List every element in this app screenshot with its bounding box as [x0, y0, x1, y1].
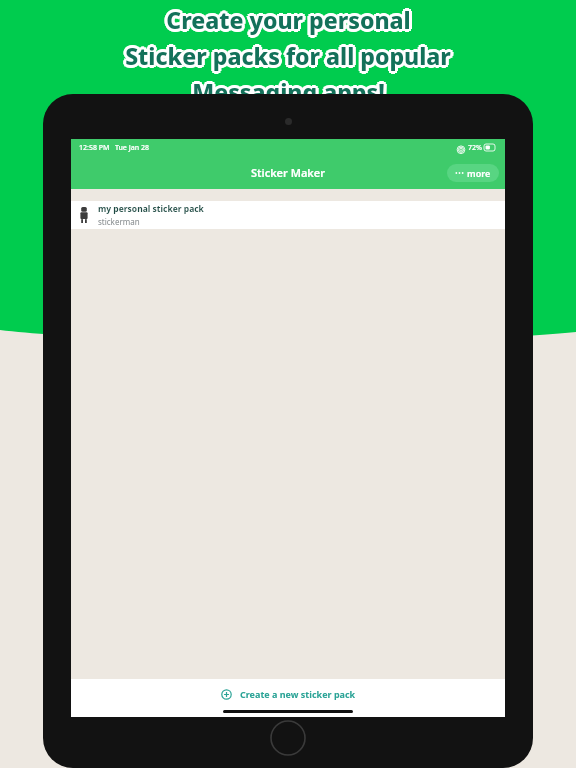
staticText: Create your personal: [166, 4, 411, 35]
staticText: more: [467, 167, 491, 179]
staticText: Sticker Maker: [251, 165, 326, 180]
staticText: Messaging apps!: [190, 76, 383, 107]
staticText: Sticker packs for all popular: [125, 38, 451, 69]
staticText: Create your personal: [168, 2, 413, 33]
staticText: Messaging apps!: [192, 78, 385, 109]
button[interactable]: more: [447, 164, 499, 182]
staticText: Sticker packs for all popular: [125, 43, 451, 74]
staticText: Messaging apps!: [194, 74, 387, 105]
staticText: Sticker packs for all popular: [128, 40, 454, 71]
staticText: Create your personal: [168, 6, 413, 37]
staticText: Create your personal: [169, 4, 414, 35]
staticText: Messaging apps!: [192, 79, 385, 110]
staticText: my personal sticker pack: [98, 203, 204, 215]
staticText: Messaging apps!: [194, 78, 387, 109]
staticText: Sticker packs for all popular: [127, 42, 453, 73]
button[interactable]: my personal sticker pack: [71, 201, 505, 229]
staticText: Create your personal: [168, 4, 413, 35]
staticText: Create your personal: [164, 6, 409, 37]
staticText: 72%: [468, 143, 482, 153]
staticText: Messaging apps!: [194, 76, 387, 107]
button[interactable]: Create a new sticker pack: [211, 684, 366, 704]
staticText: Messaging apps!: [192, 74, 385, 105]
staticText: Create your personal: [166, 6, 411, 37]
staticText: Sticker packs for all popular: [122, 40, 448, 71]
staticText: Messaging apps!: [189, 76, 382, 107]
staticText: stickerman: [98, 216, 140, 227]
staticText: 12:58 PM Tue Jan 28: [79, 143, 149, 153]
staticText: Create your personal: [166, 7, 411, 38]
staticText: Create your personal: [164, 2, 409, 33]
staticText: Create your personal: [163, 4, 408, 35]
staticText: Sticker packs for all popular: [125, 42, 451, 73]
staticText: Messaging apps!: [192, 76, 385, 107]
staticText: Sticker packs for all popular: [127, 40, 453, 71]
staticText: Sticker packs for all popular: [125, 40, 451, 71]
staticText: Sticker packs for all popular: [123, 42, 449, 73]
staticText: Create your personal: [164, 4, 409, 35]
staticText: Sticker packs for all popular: [125, 37, 451, 68]
staticText: Sticker packs for all popular: [123, 38, 449, 69]
staticText: Create your personal: [166, 2, 411, 33]
staticText: Messaging apps!: [190, 74, 383, 105]
staticText: Sticker packs for all popular: [123, 40, 449, 71]
staticText: Sticker packs for all popular: [127, 38, 453, 69]
staticText: Create a new sticker pack: [240, 688, 356, 700]
staticText: Messaging apps!: [195, 76, 388, 107]
staticText: Create your personal: [166, 1, 411, 32]
staticText: Messaging apps!: [192, 73, 385, 104]
staticText: Messaging apps!: [190, 78, 383, 109]
